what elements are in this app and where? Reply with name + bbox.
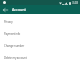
staticText: Delete my account — [4, 56, 27, 60]
button[interactable]: Privacy — [0, 16, 80, 28]
staticText: Payment info — [4, 32, 21, 36]
button[interactable]: Delete my account — [0, 52, 80, 64]
staticText: Change number — [4, 44, 24, 48]
staticText: Account — [12, 7, 26, 12]
staticText: 3:28 — [72, 1, 78, 5]
button[interactable]: Back — [0, 5, 10, 14]
button[interactable]: Payment info — [0, 28, 80, 40]
staticText: Privacy — [4, 20, 13, 24]
button[interactable]: Change number — [0, 40, 80, 52]
